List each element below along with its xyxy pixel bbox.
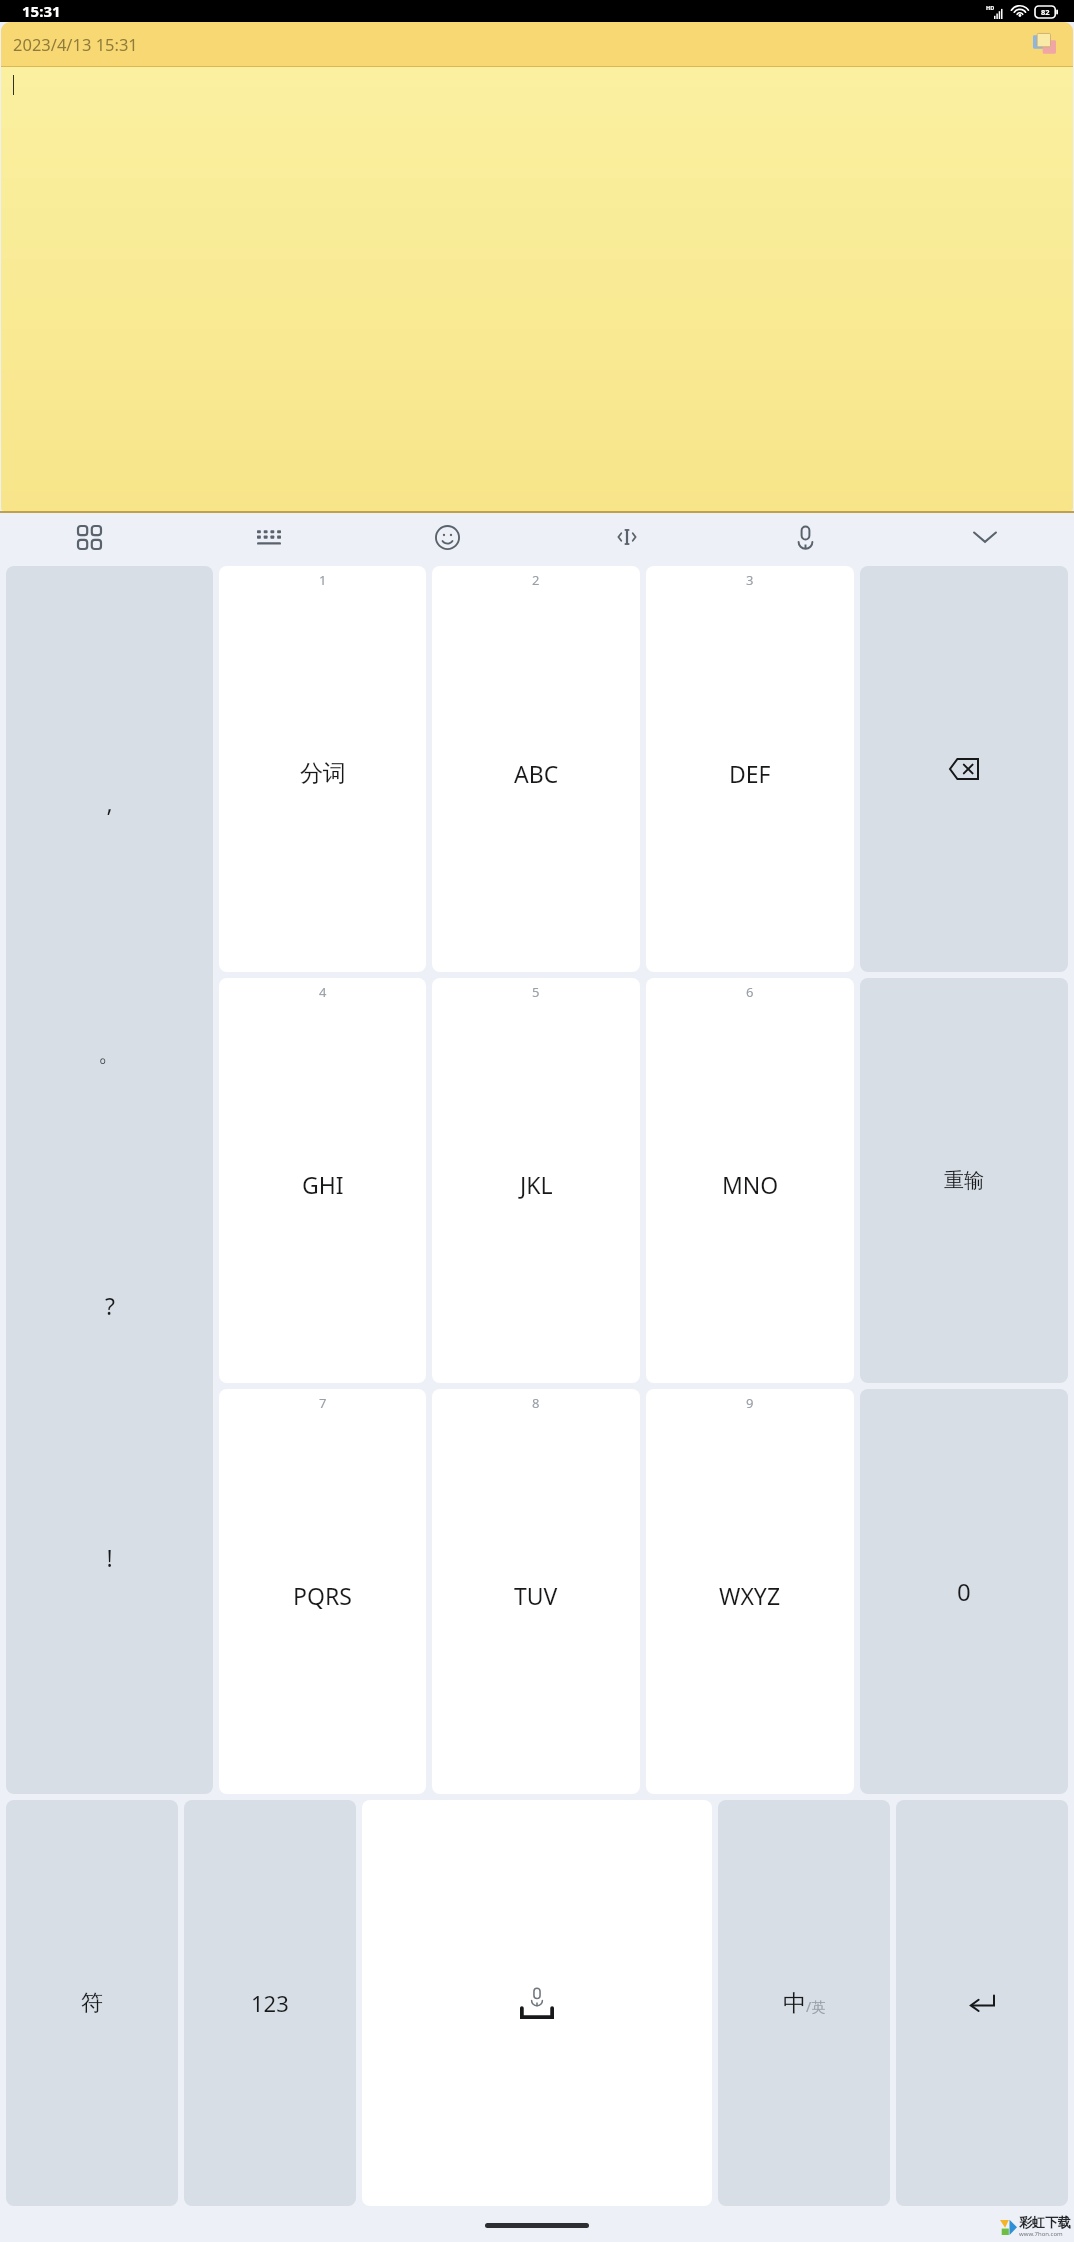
staticText: ABC bbox=[514, 758, 559, 789]
button[interactable]: 2 bbox=[432, 566, 640, 972]
button[interactable]: 5 bbox=[432, 978, 640, 1383]
staticText: , bbox=[106, 787, 113, 818]
staticText: 4 bbox=[319, 983, 327, 1001]
button[interactable]: 2023/4/13 15:31 bbox=[1, 22, 1073, 66]
staticText: HD bbox=[986, 4, 995, 11]
button[interactable]: Switch keyboard bbox=[179, 513, 358, 561]
staticText: TUV bbox=[514, 1580, 558, 1611]
button[interactable]: 1 bbox=[219, 566, 426, 972]
staticText: 7 bbox=[319, 1394, 327, 1412]
button[interactable]: Space bbox=[362, 1800, 712, 2206]
staticText: 82 bbox=[1041, 7, 1050, 17]
staticText: 0 bbox=[957, 1575, 971, 1608]
staticText: 1 bbox=[319, 571, 327, 589]
staticText: 重输 bbox=[944, 1168, 984, 1193]
staticText: 8 bbox=[532, 1394, 540, 1412]
button[interactable]: 重输 bbox=[860, 978, 1068, 1383]
button[interactable] bbox=[1, 67, 1073, 511]
staticText: 6 bbox=[746, 983, 754, 1001]
staticText: /英 bbox=[806, 1997, 826, 2016]
button[interactable]: 0 bbox=[860, 1389, 1068, 1794]
staticText: 2023/4/13 15:31 bbox=[13, 33, 138, 55]
button[interactable]: 123 bbox=[184, 1800, 356, 2206]
button[interactable]: 6 bbox=[646, 978, 854, 1383]
button[interactable]: Enter bbox=[896, 1800, 1068, 2206]
button[interactable]: Voice input bbox=[716, 513, 895, 561]
button[interactable]: 9 bbox=[646, 1389, 854, 1794]
button[interactable]: Keyboard layouts bbox=[0, 513, 179, 561]
button[interactable]: 符 bbox=[6, 1800, 178, 2206]
staticText: 9 bbox=[746, 1394, 754, 1412]
staticText: PQRS bbox=[293, 1580, 352, 1611]
staticText: 中 bbox=[783, 1989, 806, 2018]
button[interactable]: Change note colour bbox=[1023, 23, 1065, 65]
button[interactable]: 8 bbox=[432, 1389, 640, 1794]
button[interactable]: , bbox=[6, 566, 213, 1794]
staticText: ? bbox=[105, 1290, 115, 1321]
staticText: 彩虹下载 bbox=[1019, 2214, 1071, 2230]
staticText: GHI bbox=[302, 1169, 344, 1200]
button[interactable]: 中 bbox=[718, 1800, 890, 2206]
button[interactable]: Move cursor bbox=[537, 513, 716, 561]
button[interactable]: Hide keyboard bbox=[895, 513, 1074, 561]
staticText: 3 bbox=[746, 571, 754, 589]
staticText: 15:31 bbox=[22, 1, 61, 21]
button[interactable]: 7 bbox=[219, 1389, 426, 1794]
staticText: 。 bbox=[98, 1039, 121, 1068]
staticText: 5 bbox=[532, 983, 540, 1001]
button[interactable]: Emoji bbox=[358, 513, 537, 561]
staticText: DEF bbox=[729, 758, 771, 789]
button[interactable]: 4 bbox=[219, 978, 426, 1383]
button[interactable]: 3 bbox=[646, 566, 854, 972]
staticText: 符 bbox=[81, 1989, 103, 2017]
staticText: JKL bbox=[520, 1169, 553, 1200]
staticText: ! bbox=[106, 1542, 113, 1573]
staticText: WXYZ bbox=[719, 1580, 781, 1611]
staticText: 123 bbox=[251, 1988, 289, 2018]
staticText: 分词 bbox=[300, 759, 346, 788]
button[interactable]: Delete bbox=[860, 566, 1068, 972]
staticText: 2 bbox=[532, 571, 540, 589]
staticText: www.7hon.com bbox=[1019, 2230, 1063, 2238]
staticText: MNO bbox=[722, 1169, 779, 1200]
